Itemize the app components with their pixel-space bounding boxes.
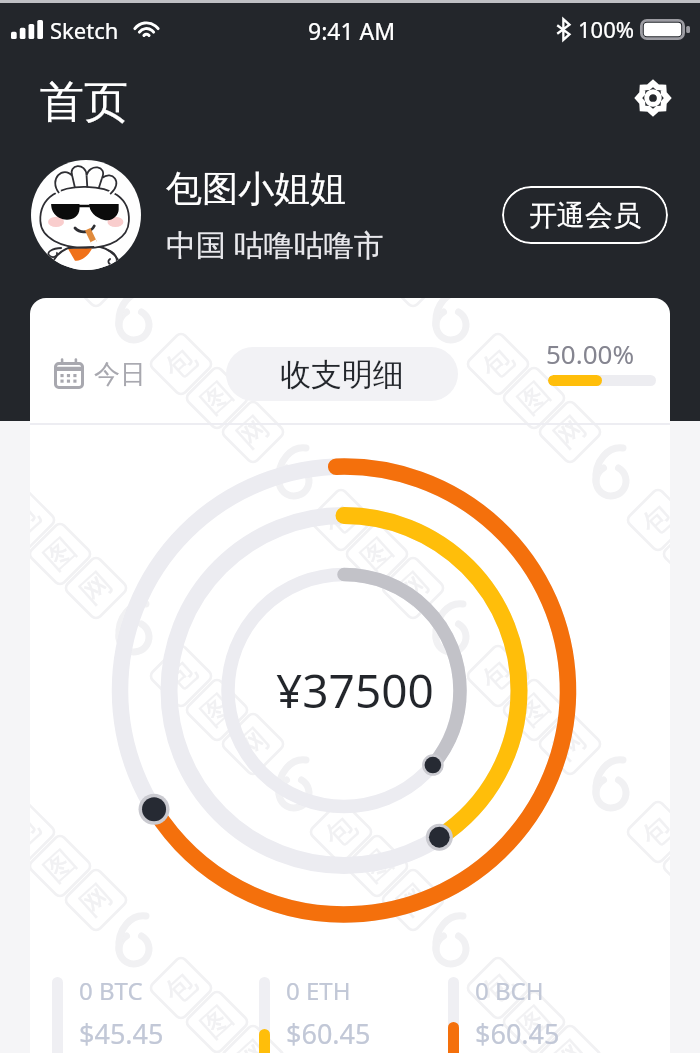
button[interactable]: 0 BTC <box>52 977 242 1053</box>
staticText: $45.45 <box>79 1015 164 1052</box>
button[interactable]: Profile avatar <box>31 160 141 270</box>
button[interactable]: 0 BCH <box>448 977 638 1053</box>
staticText: $60.45 <box>475 1015 560 1052</box>
staticText: 今日 <box>94 358 146 391</box>
button[interactable]: 开通会员 <box>502 186 668 244</box>
staticText: 开通会员 <box>529 198 641 233</box>
staticText: $60.45 <box>286 1015 371 1052</box>
staticText: ¥37500 <box>276 659 434 722</box>
staticText: 首页 <box>40 75 128 130</box>
staticText: Sketch <box>50 15 119 45</box>
staticText: 收支明细 <box>280 355 404 394</box>
button[interactable]: 收支明细 <box>226 347 458 401</box>
button[interactable]: 0 ETH <box>259 977 449 1053</box>
staticText: 包图小姐姐 <box>166 166 346 211</box>
staticText: 0 BTC <box>79 974 143 1007</box>
staticText: 50.00% <box>546 336 635 371</box>
staticText: 中国 咕噜咕噜市 <box>166 224 384 265</box>
staticText: 0 ETH <box>286 974 351 1007</box>
staticText: 100% <box>578 14 635 44</box>
staticText: 0 BCH <box>475 974 544 1007</box>
staticText: 9:41 AM <box>308 15 396 46</box>
button[interactable]: Settings <box>631 76 675 120</box>
